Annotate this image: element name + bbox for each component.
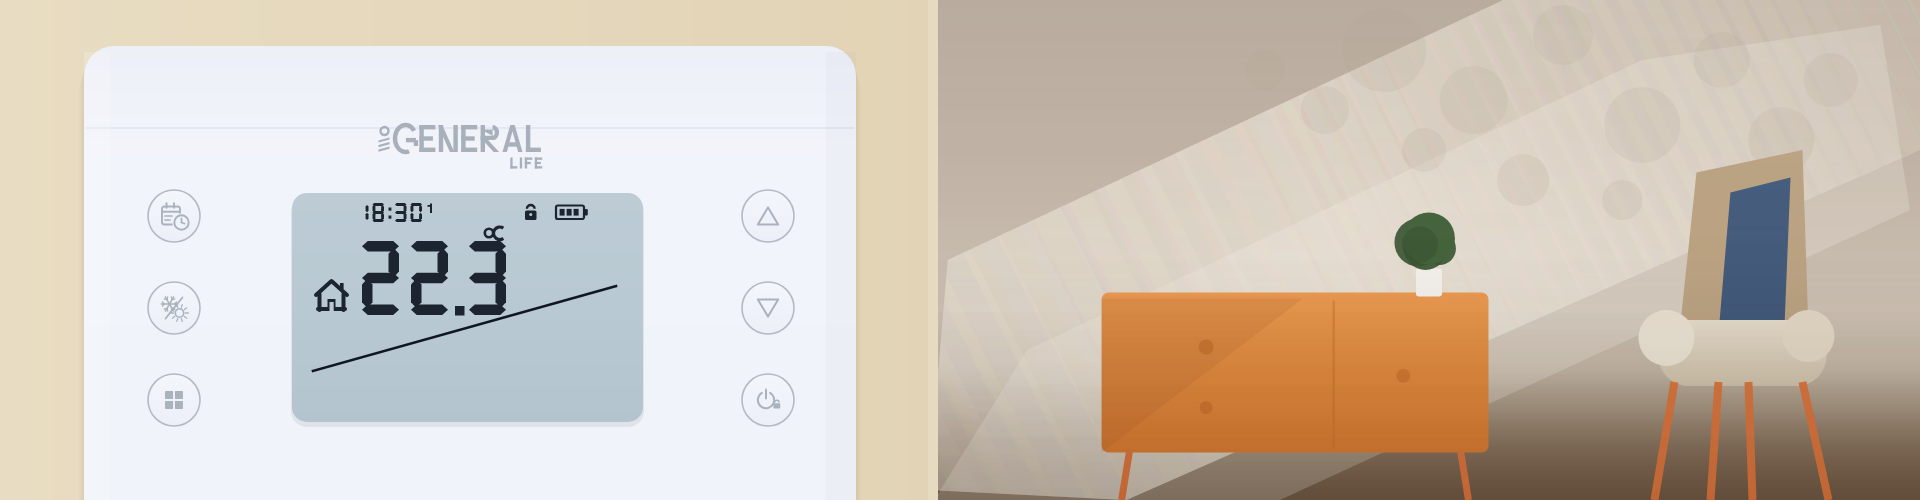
button[interactable]: Menu: [148, 374, 200, 426]
button[interactable]: Thermostat display 22.3 degrees: [292, 193, 643, 422]
button[interactable]: Power and lock: [742, 374, 794, 426]
button[interactable]: Decrease temperature: [742, 282, 794, 334]
button[interactable]: Heat and cool mode: [148, 282, 200, 334]
button[interactable]: Schedule: [148, 190, 200, 242]
button[interactable]: Increase temperature: [742, 190, 794, 242]
